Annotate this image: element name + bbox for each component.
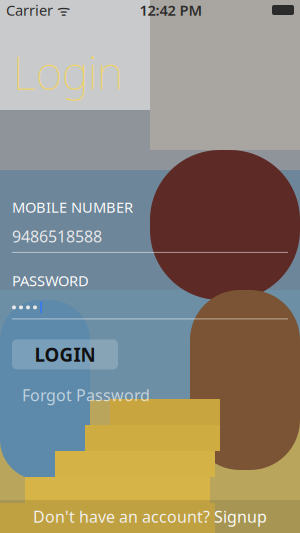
staticText: ᯤ bbox=[53, 0, 70, 20]
staticText: Forgot Password bbox=[22, 384, 150, 406]
staticText: MOBILE NUMBER bbox=[12, 197, 133, 217]
button[interactable]: Don't have an account? bbox=[0, 500, 300, 533]
staticText: 12:42 PM bbox=[139, 0, 202, 20]
staticText: PASSWORD bbox=[12, 271, 89, 290]
button[interactable]: LOGIN bbox=[12, 339, 118, 369]
button[interactable]: Forgot Password bbox=[12, 381, 160, 409]
staticText: Don't have an account? bbox=[33, 506, 210, 527]
staticText: Login bbox=[13, 42, 123, 102]
staticText: Carrier bbox=[6, 0, 53, 20]
staticText: LOGIN bbox=[34, 342, 95, 367]
staticText: 9486518588 bbox=[12, 226, 102, 247]
staticText: Signup bbox=[214, 506, 267, 527]
